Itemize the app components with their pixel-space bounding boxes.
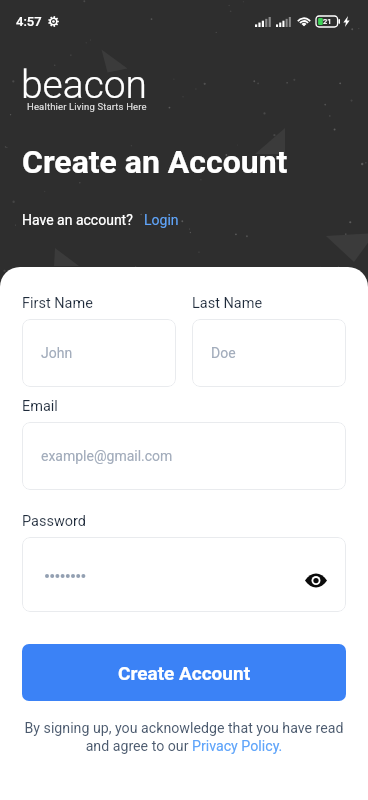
staticText: Email (22, 398, 58, 415)
staticText: Password (22, 513, 87, 530)
staticText: Create Account (118, 662, 251, 684)
staticText: 4:57 (16, 14, 42, 29)
staticText: Have an account? (22, 212, 133, 228)
button[interactable]: Show password (301, 565, 331, 595)
staticText: example@gmail.com (41, 448, 173, 464)
button[interactable]: John (22, 319, 176, 387)
staticText: Last Name (192, 295, 263, 312)
button[interactable]: Show password (22, 537, 346, 612)
button[interactable]: Create Account (22, 644, 346, 701)
button[interactable]: Doe (192, 319, 346, 387)
staticText: Create an Account (22, 143, 288, 181)
staticText: 21 (323, 17, 332, 26)
staticText: Login (144, 212, 179, 228)
button[interactable]: example@gmail.com (22, 422, 346, 490)
staticText: By signing up, you acknowledge that you … (23, 720, 345, 754)
staticText: Healthier Living Starts Here (27, 101, 147, 112)
button[interactable]: Login (133, 208, 189, 232)
staticText: beacon (21, 62, 148, 108)
staticText: John (41, 345, 73, 361)
staticText: Doe (211, 345, 236, 361)
staticText: First Name (22, 295, 93, 312)
